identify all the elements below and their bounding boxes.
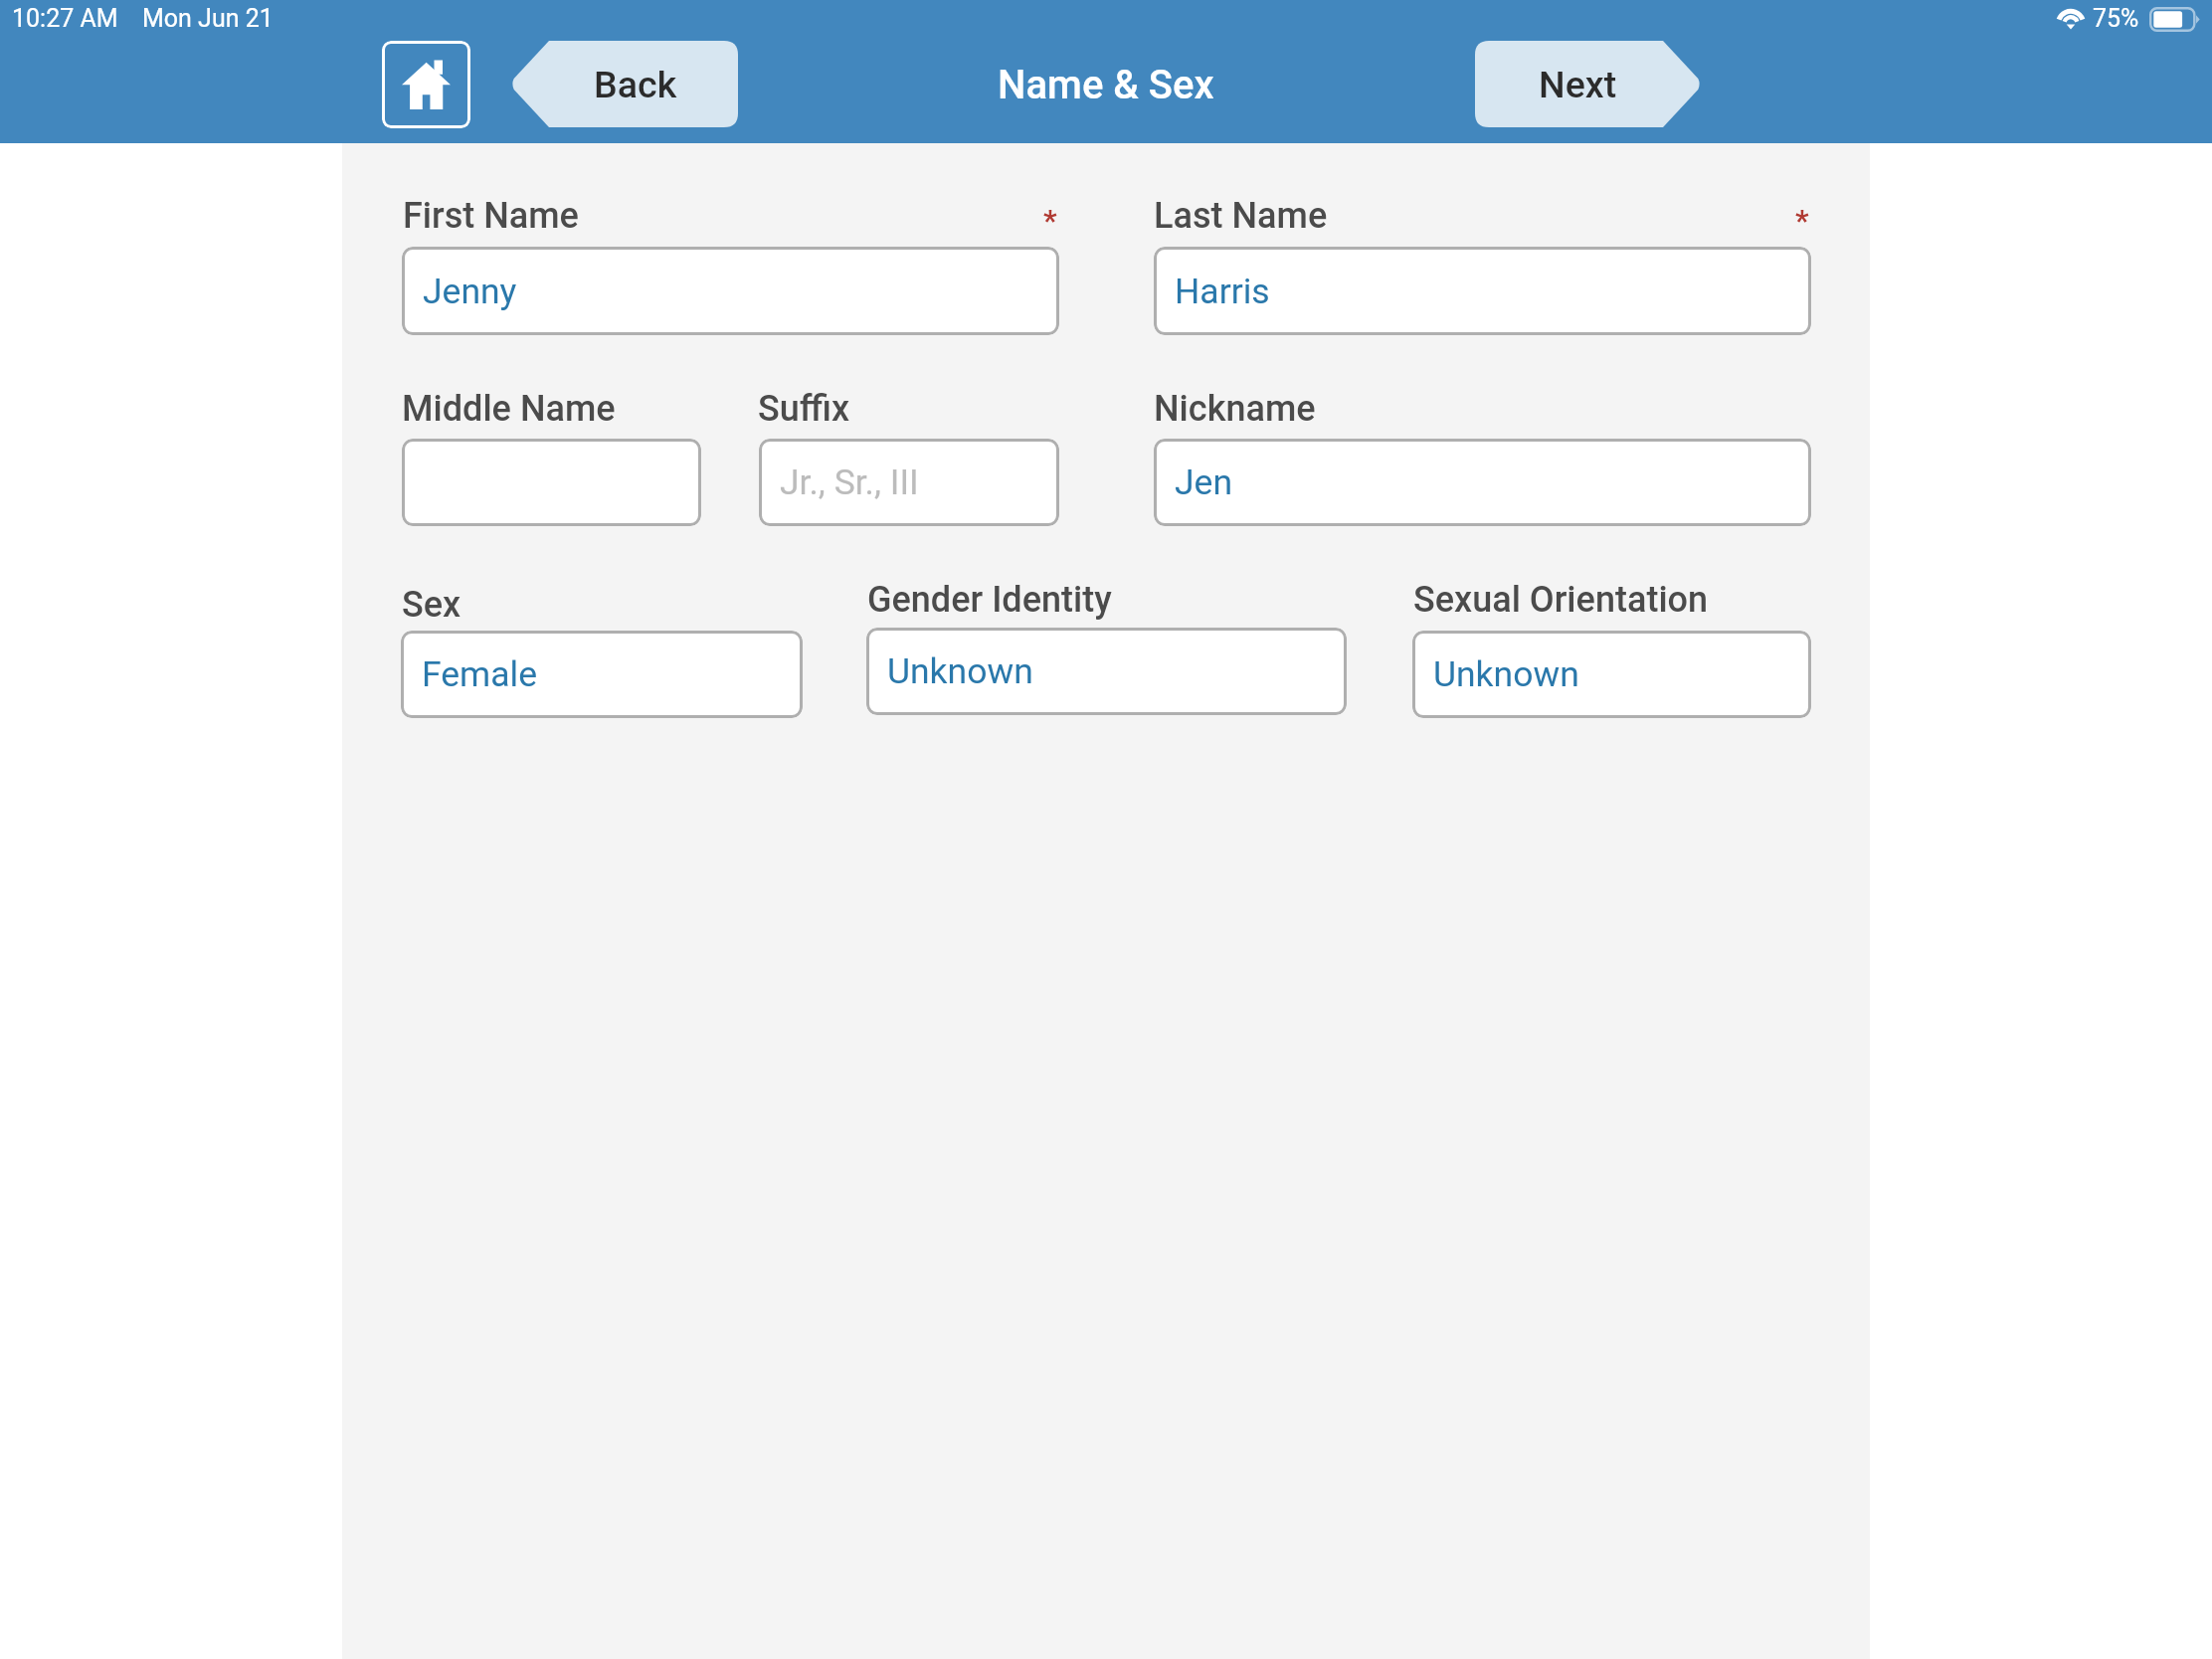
staticText: Jenny <box>423 271 517 312</box>
button[interactable]: Back <box>511 41 738 127</box>
staticText: * <box>1043 203 1057 238</box>
staticText: Jr., Sr., III <box>780 461 919 503</box>
staticText: Back <box>594 63 677 106</box>
staticText: Nickname <box>1154 388 1316 430</box>
staticText: Harris <box>1175 271 1270 312</box>
button[interactable]: Jen <box>1154 439 1811 526</box>
staticText: * <box>1795 203 1809 238</box>
staticText: Mon Jun 21 <box>142 4 274 33</box>
staticText: 75% <box>2093 4 2139 33</box>
staticText: Unknown <box>1433 653 1579 695</box>
staticText: Sex <box>402 584 461 626</box>
staticText: Next <box>1539 63 1617 106</box>
staticText: Female <box>422 653 537 695</box>
staticText: Middle Name <box>402 388 616 430</box>
button[interactable]: Jenny <box>402 247 1059 335</box>
staticText: Name & Sex <box>998 62 1214 108</box>
staticText: Gender Identity <box>867 579 1112 621</box>
button[interactable] <box>402 439 701 526</box>
button[interactable]: Next <box>1475 41 1701 127</box>
staticText: Jen <box>1175 461 1233 503</box>
button[interactable]: Female <box>401 631 803 718</box>
staticText: Sexual Orientation <box>1413 579 1709 621</box>
staticText: Unknown <box>887 650 1033 692</box>
button[interactable]: Unknown <box>1412 631 1811 718</box>
staticText: Suffix <box>758 388 850 430</box>
button[interactable]: Jr., Sr., III <box>759 439 1059 526</box>
staticText: 10:27 AM <box>12 4 118 33</box>
staticText: First Name <box>403 195 579 237</box>
button[interactable]: Home <box>382 41 470 128</box>
button[interactable]: Unknown <box>866 628 1347 715</box>
staticText: Last Name <box>1154 195 1328 237</box>
button[interactable]: Harris <box>1154 247 1811 335</box>
